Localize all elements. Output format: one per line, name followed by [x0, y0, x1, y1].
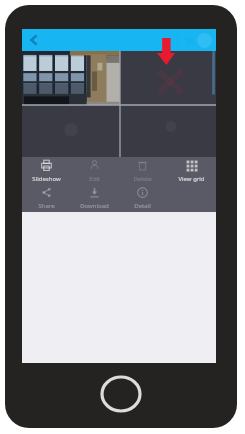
staticText: Delete	[133, 175, 152, 183]
button[interactable]: Home	[100, 375, 142, 413]
button[interactable]: Share	[167, 33, 182, 48]
button[interactable]: Slideshow	[22, 157, 70, 184]
staticText: Edit	[89, 175, 100, 183]
button[interactable]: View grid	[167, 157, 216, 184]
button[interactable]: More options	[197, 33, 212, 48]
button[interactable]: Edit	[70, 157, 118, 184]
button[interactable]: Delete	[118, 157, 167, 184]
staticText: Share	[38, 202, 55, 210]
button[interactable]: Back	[27, 33, 41, 47]
staticText: View grid	[178, 175, 205, 183]
button[interactable]: Share	[22, 184, 70, 211]
staticText: Detail	[134, 202, 151, 210]
staticText: Slideshow	[32, 175, 61, 183]
button[interactable]: Download	[70, 184, 118, 211]
staticText: Download	[80, 202, 109, 210]
button[interactable]: Detail	[118, 184, 167, 211]
button[interactable]: Photo thumbnail	[22, 51, 120, 105]
